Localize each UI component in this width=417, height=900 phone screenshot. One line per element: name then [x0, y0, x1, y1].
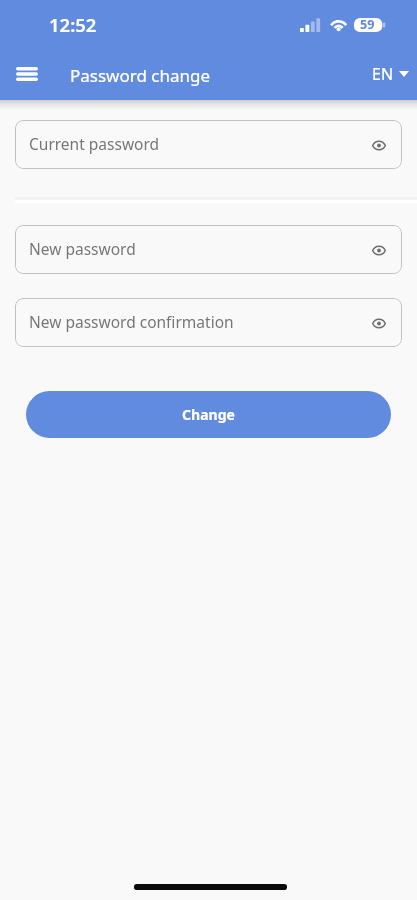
button[interactable]: Show password: [368, 308, 390, 338]
staticText: New password confirmation: [29, 311, 368, 332]
staticText: 59: [360, 16, 375, 33]
button[interactable]: Current password: [15, 120, 402, 169]
button[interactable]: New password confirmation: [15, 298, 402, 347]
button[interactable]: Menu: [7, 54, 47, 94]
staticText: Change: [182, 405, 235, 424]
button[interactable]: EN: [370, 57, 411, 91]
button[interactable]: Show password: [368, 130, 390, 160]
staticText: Password change: [70, 64, 211, 87]
staticText: 12:52: [49, 12, 97, 37]
button[interactable]: New password: [15, 225, 402, 274]
staticText: EN: [372, 63, 394, 85]
staticText: Current password: [29, 133, 368, 154]
button[interactable]: Change: [26, 391, 391, 438]
button[interactable]: Show password: [368, 235, 390, 265]
staticText: New password: [29, 238, 368, 259]
